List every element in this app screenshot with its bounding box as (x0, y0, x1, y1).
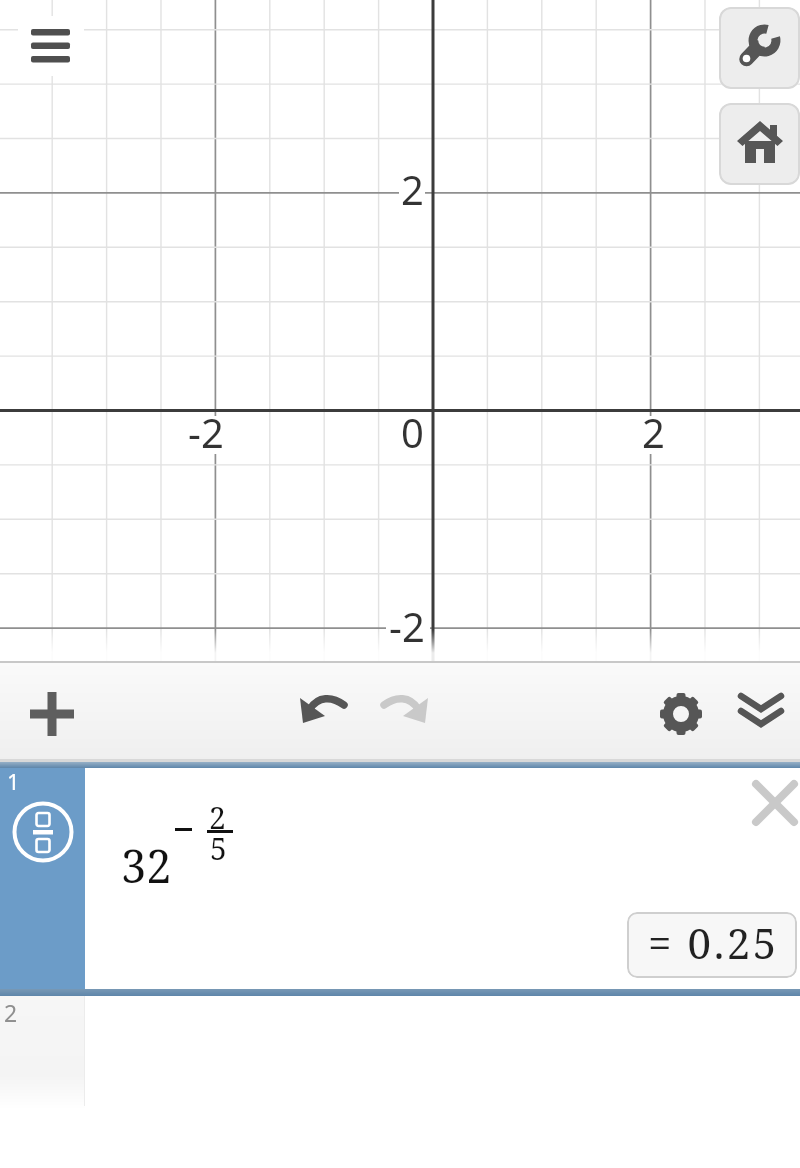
button[interactable]: 32 (85, 768, 800, 989)
button[interactable]: = 0.25 (627, 912, 797, 978)
button[interactable] (719, 7, 800, 89)
staticText: 2 (642, 405, 665, 459)
staticText: 2 (4, 997, 18, 1028)
button[interactable]: 2 (0, 996, 85, 1110)
staticText: 5 (210, 828, 227, 869)
staticText: 0 (401, 405, 424, 459)
staticText: -2 (389, 599, 425, 653)
staticText: 2 (401, 162, 424, 216)
button[interactable] (731, 682, 791, 742)
button[interactable] (293, 680, 353, 740)
button[interactable] (22, 684, 82, 744)
staticText: 32 (121, 835, 172, 896)
staticText: 2 (209, 797, 226, 838)
button[interactable] (375, 680, 435, 740)
staticText: 1 (7, 766, 20, 796)
staticText: = 0.25 (648, 914, 779, 971)
button[interactable] (18, 16, 84, 76)
button[interactable] (719, 103, 800, 185)
button[interactable] (745, 773, 800, 833)
button[interactable] (651, 684, 711, 744)
staticText: -2 (188, 405, 224, 459)
button[interactable]: 1 (0, 768, 85, 989)
